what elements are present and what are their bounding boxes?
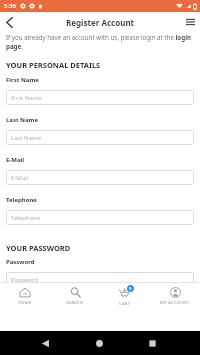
staticText: Telephone bbox=[11, 214, 41, 222]
staticText: YOUR PASSWORD bbox=[6, 243, 71, 253]
button[interactable]: Back bbox=[0, 12, 18, 32]
staticText: MY ACCOUNT bbox=[160, 300, 190, 306]
button[interactable]: Home bbox=[95, 339, 104, 348]
button[interactable]: Password bbox=[6, 272, 194, 287]
staticText: Password bbox=[11, 276, 39, 284]
button[interactable]: Last Name bbox=[6, 130, 194, 145]
staticText: SEARCH bbox=[66, 300, 84, 306]
staticText: E-Mail bbox=[11, 174, 29, 182]
staticText: E-Mail bbox=[6, 156, 25, 164]
button[interactable]: Back bbox=[41, 339, 50, 348]
button[interactable]: HOME bbox=[0, 283, 50, 310]
staticText: If you already have an account with us, … bbox=[6, 33, 194, 51]
staticText: 5:36 bbox=[4, 2, 16, 10]
staticText: CART bbox=[119, 301, 131, 307]
staticText: First Name bbox=[11, 94, 42, 102]
button[interactable]: SEARCH bbox=[50, 283, 100, 310]
staticText: Password bbox=[6, 258, 35, 266]
staticText: Register Account bbox=[66, 17, 135, 28]
button[interactable]: 0 bbox=[100, 283, 150, 310]
button[interactable]: E-Mail bbox=[6, 170, 194, 185]
staticText: Last Name bbox=[11, 134, 42, 142]
button[interactable]: MY ACCOUNT bbox=[150, 283, 200, 310]
staticText: YOUR PERSONAL DETAILS bbox=[6, 60, 101, 70]
button[interactable]: First Name bbox=[6, 90, 194, 105]
staticText: 0 bbox=[129, 286, 132, 291]
staticText: Last Name bbox=[6, 116, 39, 124]
button[interactable]: Menu bbox=[180, 12, 200, 32]
staticText: First Name bbox=[6, 76, 39, 84]
button[interactable]: Recents bbox=[148, 339, 157, 348]
staticText: HOME bbox=[18, 300, 32, 306]
button[interactable]: Telephone bbox=[6, 210, 194, 225]
staticText: Telephone bbox=[6, 196, 37, 204]
